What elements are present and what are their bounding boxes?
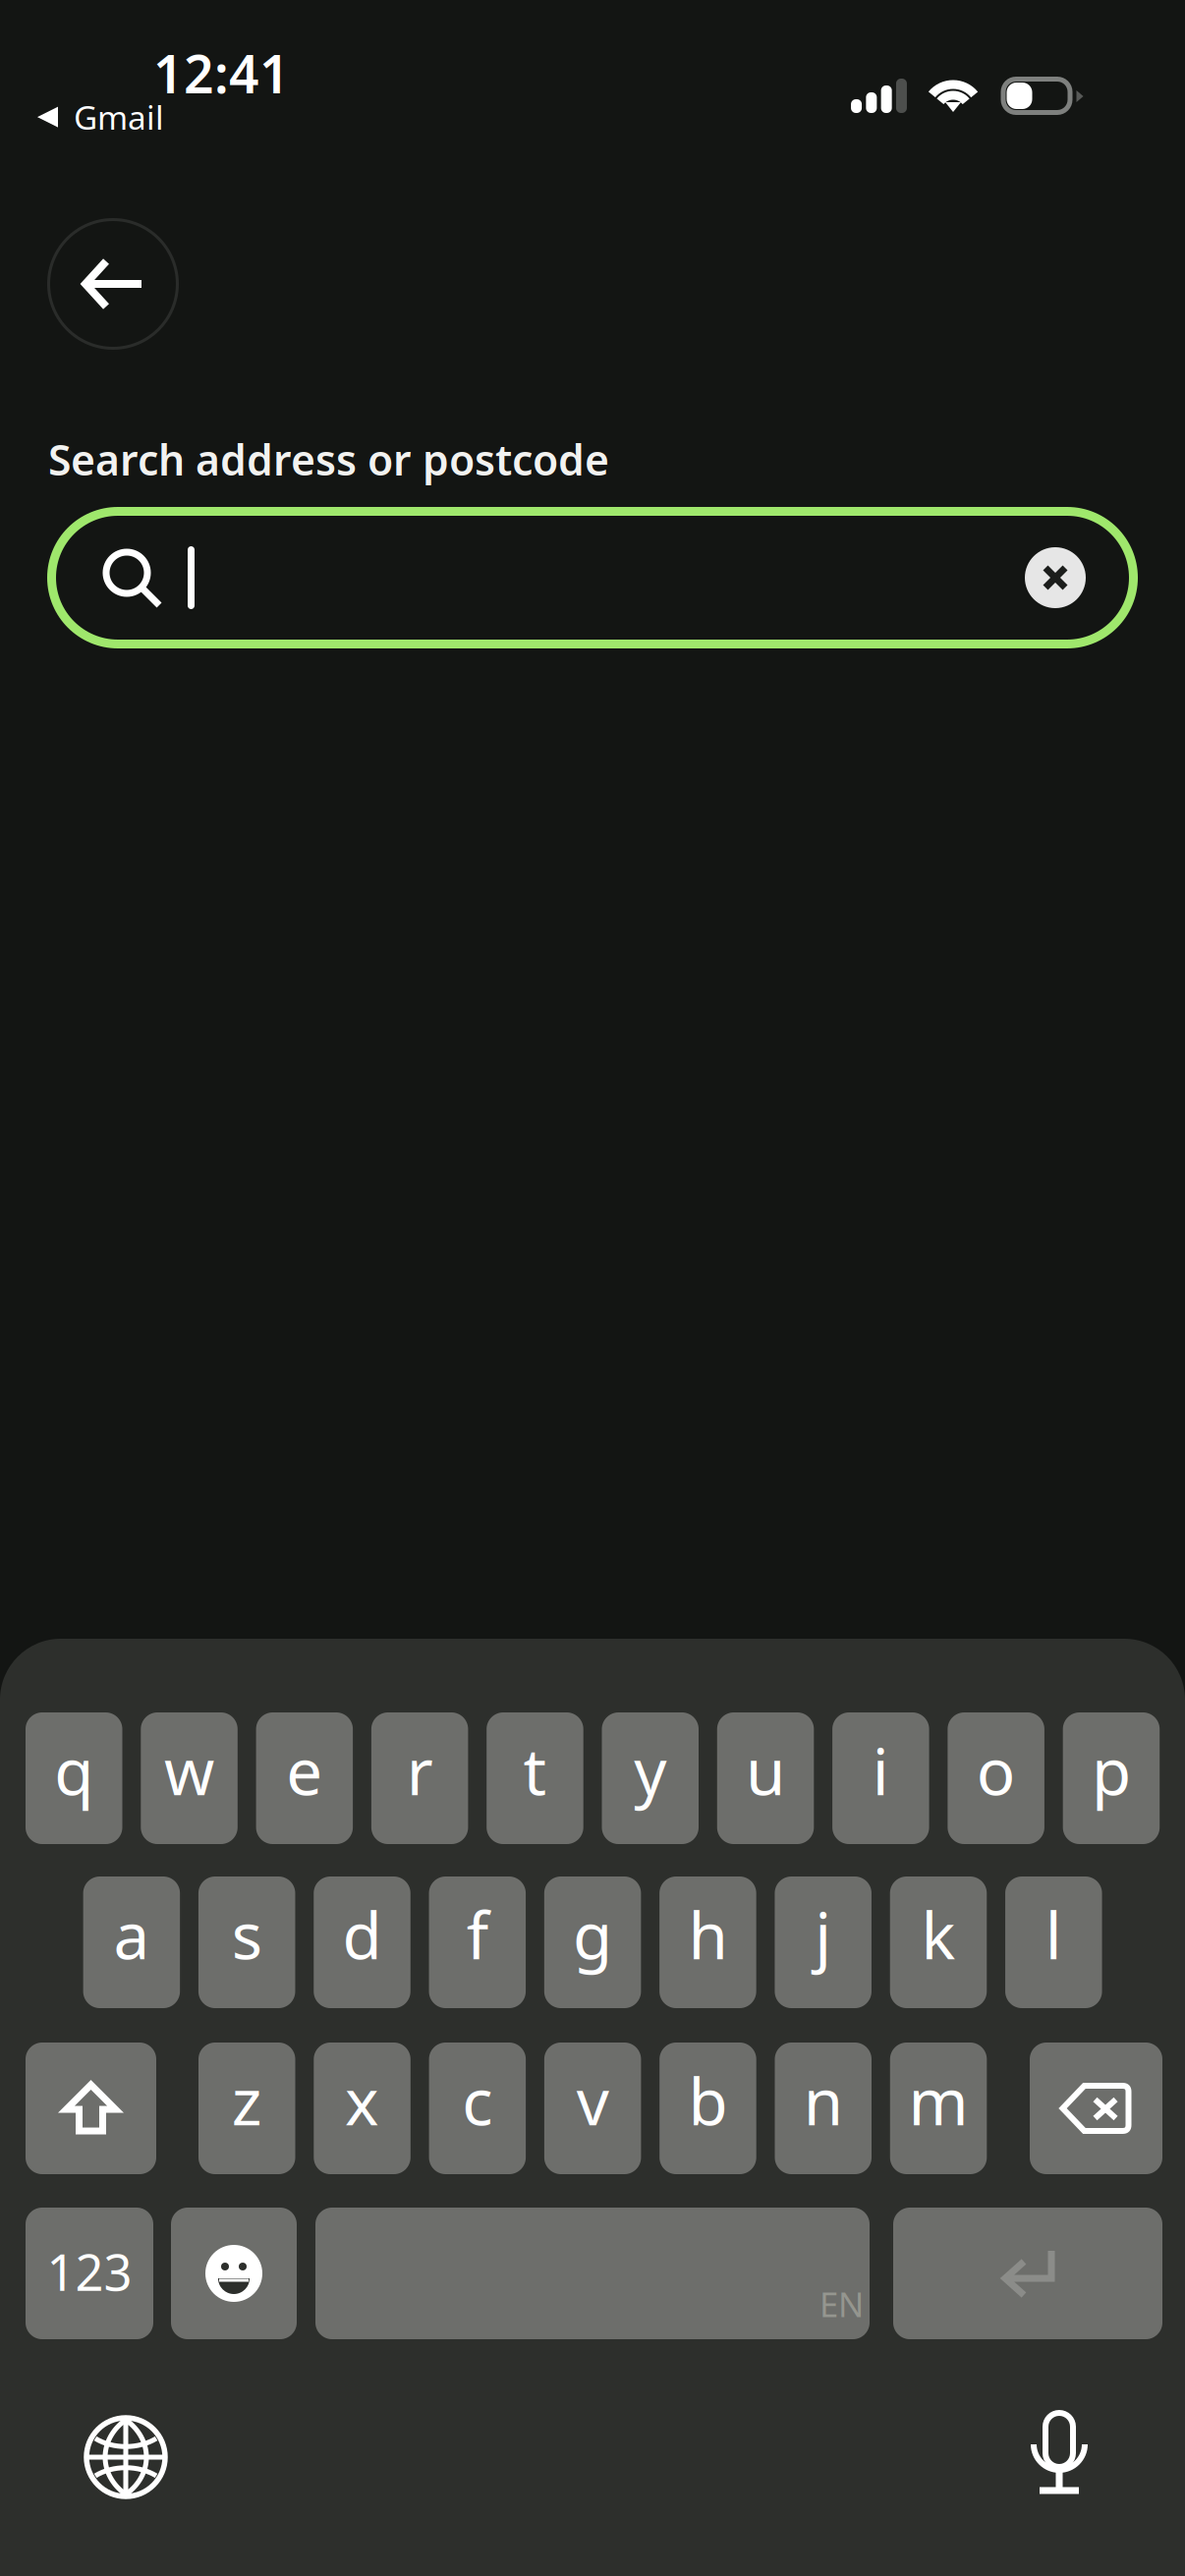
button[interactable]: a xyxy=(83,1876,180,2008)
button[interactable]: z xyxy=(198,2043,295,2174)
button[interactable]: m xyxy=(890,2043,987,2174)
button[interactable]: h xyxy=(659,1876,756,2008)
staticText: EN xyxy=(819,2281,864,2326)
staticText: q xyxy=(54,1728,94,1813)
button[interactable]: Delete xyxy=(1030,2043,1162,2174)
button[interactable]: Clear text xyxy=(1025,547,1086,608)
staticText: s xyxy=(232,1892,262,1977)
button[interactable]: x xyxy=(314,2043,411,2174)
button[interactable]: Return xyxy=(893,2208,1162,2339)
staticText: j xyxy=(815,1892,831,1977)
button[interactable]: k xyxy=(890,1876,987,2008)
button[interactable]: w xyxy=(141,1712,238,1844)
staticText: n xyxy=(804,2058,843,2143)
staticText: a xyxy=(113,1892,150,1977)
button[interactable]: r xyxy=(371,1712,468,1844)
staticText: u xyxy=(746,1728,785,1813)
button[interactable]: c xyxy=(429,2043,526,2174)
staticText: x xyxy=(345,2058,379,2143)
staticText: o xyxy=(976,1728,1016,1813)
button[interactable]: y xyxy=(602,1712,699,1844)
staticText: c xyxy=(462,2058,493,2143)
staticText: b xyxy=(688,2058,728,2143)
button[interactable]: f xyxy=(429,1876,526,2008)
button[interactable]: d xyxy=(314,1876,410,2008)
button[interactable]: Next keyboard xyxy=(86,2418,165,2496)
staticText: d xyxy=(342,1892,382,1977)
button[interactable]: Emoji xyxy=(171,2208,297,2339)
staticText: Search address or postcode xyxy=(48,431,609,487)
button[interactable]: Search address or postcode xyxy=(47,507,1138,648)
button[interactable]: n xyxy=(775,2043,872,2174)
staticText: 12:41 xyxy=(153,38,290,108)
staticText: l xyxy=(1045,1892,1062,1977)
staticText: h xyxy=(688,1892,728,1977)
staticText: m xyxy=(908,2058,968,2143)
staticText: Gmail xyxy=(74,95,164,139)
button[interactable]: Back xyxy=(47,218,179,350)
button[interactable]: g xyxy=(544,1876,641,2008)
button[interactable]: space xyxy=(315,2208,870,2339)
button[interactable]: l xyxy=(1005,1876,1102,2008)
button[interactable]: q xyxy=(26,1712,122,1844)
button[interactable]: v xyxy=(544,2043,641,2174)
staticText: v xyxy=(576,2058,609,2143)
staticText: i xyxy=(872,1728,889,1813)
staticText: w xyxy=(164,1728,214,1813)
button[interactable]: b xyxy=(660,2043,756,2174)
button[interactable]: 123 xyxy=(26,2208,153,2339)
staticText: 123 xyxy=(47,2238,132,2305)
staticText: f xyxy=(467,1892,488,1977)
staticText: e xyxy=(286,1728,323,1813)
button[interactable]: e xyxy=(256,1712,353,1844)
button[interactable]: o xyxy=(948,1712,1044,1844)
staticText: y xyxy=(634,1728,666,1813)
staticText: p xyxy=(1092,1728,1131,1813)
button[interactable]: s xyxy=(198,1876,295,2008)
button[interactable]: u xyxy=(717,1712,814,1844)
staticText: k xyxy=(921,1892,956,1977)
staticText: t xyxy=(523,1728,547,1813)
button[interactable]: t xyxy=(487,1712,583,1844)
staticText: z xyxy=(232,2058,262,2143)
staticText: g xyxy=(573,1892,612,1977)
button[interactable]: i xyxy=(832,1712,929,1844)
button[interactable]: Shift xyxy=(26,2043,156,2174)
button[interactable]: j xyxy=(775,1876,871,2008)
staticText: r xyxy=(406,1728,433,1813)
button[interactable]: p xyxy=(1063,1712,1160,1844)
button[interactable]: Dictate xyxy=(1032,2413,1087,2493)
